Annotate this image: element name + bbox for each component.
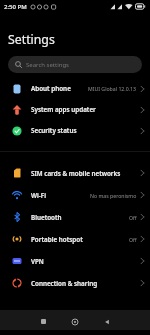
staticText: MIUI Global 12.0.13 — [88, 85, 137, 92]
staticText: Search settings — [26, 61, 69, 69]
staticText: No mas peronismo — [90, 192, 137, 199]
staticText: Off — [129, 236, 137, 243]
button[interactable] — [91, 310, 123, 330]
staticText: Settings — [8, 31, 55, 48]
button[interactable] — [27, 310, 59, 330]
button[interactable]: Portable hotspot — [0, 228, 150, 250]
button[interactable]: Wi-Fi — [0, 184, 150, 206]
staticText: About phone — [31, 84, 71, 93]
button[interactable]: Connection & sharing — [0, 272, 150, 294]
button[interactable]: Security status — [0, 120, 150, 141]
staticText: SIM cards & mobile networks — [31, 169, 121, 178]
button[interactable]: Bluetooth — [0, 206, 150, 228]
staticText: Security status — [31, 126, 77, 135]
staticText: Off — [129, 214, 137, 221]
button[interactable]: Search settings — [8, 56, 142, 73]
staticText: Bluetooth — [31, 213, 62, 222]
staticText: 2:50 PM — [4, 3, 27, 11]
staticText: Wi-Fi — [31, 191, 46, 200]
staticText: VPN — [31, 257, 44, 266]
staticText: Portable hotspot — [31, 235, 83, 244]
button[interactable]: System apps updater — [0, 99, 150, 120]
button[interactable]: SIM cards & mobile networks — [0, 162, 150, 184]
button[interactable] — [59, 310, 91, 330]
staticText: System apps updater — [31, 105, 96, 114]
staticText: Connection & sharing — [31, 279, 98, 288]
button[interactable]: About phone — [0, 78, 150, 99]
button[interactable]: VPN — [0, 250, 150, 272]
